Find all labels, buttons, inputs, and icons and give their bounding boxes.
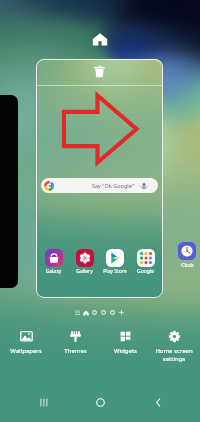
button[interactable]: Google: [131, 249, 160, 275]
staticText: Galaxy Store: [39, 268, 68, 275]
button[interactable]: Main home page: [81, 308, 90, 317]
button[interactable]: Remove page: [36, 59, 163, 298]
button[interactable]: Home: [85, 387, 115, 417]
button[interactable]: Themes: [52, 329, 98, 355]
button[interactable]: Recent apps: [28, 387, 58, 417]
staticText: Clock: [181, 262, 194, 269]
button[interactable]: Add page: [117, 308, 126, 317]
staticText: Themes: [64, 347, 87, 355]
staticText: Play Store: [103, 268, 127, 275]
staticText: Wallpapers: [10, 347, 42, 355]
button[interactable]: Play Store: [100, 249, 129, 275]
button[interactable]: Clock: [168, 59, 200, 298]
button[interactable]: Gallery: [70, 249, 99, 275]
button[interactable]: Widgets: [102, 329, 148, 355]
button[interactable]: Galaxy Store: [39, 249, 68, 275]
button[interactable]: Say "Ok Google": [41, 178, 158, 193]
staticText: Widgets: [114, 347, 137, 355]
staticText: Home screen settings: [155, 347, 193, 363]
button[interactable]: All pages: [73, 308, 81, 316]
button[interactable]: Page: [108, 308, 117, 317]
button[interactable]: Wallpapers: [3, 329, 49, 355]
staticText: Gallery: [76, 268, 93, 275]
button[interactable]: Back: [143, 387, 173, 417]
button[interactable]: Home screen settings: [151, 329, 197, 363]
button[interactable]: Home screen: [92, 31, 108, 47]
button[interactable]: [0, 95, 18, 288]
button[interactable]: Page: [90, 308, 99, 317]
button[interactable]: Page: [99, 308, 108, 317]
staticText: Google: [137, 268, 154, 275]
staticText: Say "Ok Google": [92, 182, 134, 189]
button[interactable]: Remove page: [93, 65, 106, 78]
